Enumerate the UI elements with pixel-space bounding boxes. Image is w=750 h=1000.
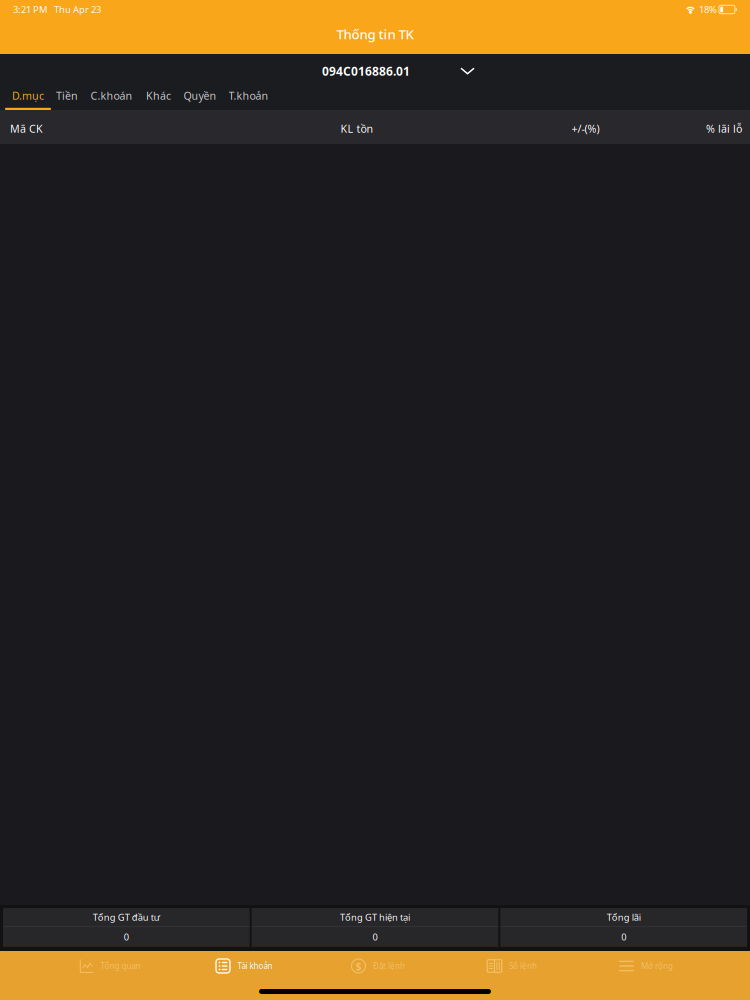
button[interactable]: C.khoán <box>83 88 140 110</box>
button[interactable]: Mở rộng <box>579 951 713 981</box>
staticText: Sổ lệnh <box>509 961 537 971</box>
staticText: 0 <box>124 931 129 943</box>
staticText: Tài khoản <box>237 961 272 971</box>
staticText: Thống tin TK <box>336 25 413 43</box>
staticText: T.khoản <box>228 88 268 103</box>
button[interactable]: T.khoản <box>223 88 274 110</box>
staticText: D.mục <box>12 88 44 103</box>
staticText: Mã CK <box>10 121 43 136</box>
button[interactable]: Tiền <box>51 88 83 110</box>
button[interactable]: Khác <box>140 88 177 110</box>
button[interactable]: Sổ lệnh <box>445 951 579 981</box>
staticText: 094C016886.01 <box>322 63 410 79</box>
button[interactable]: Tài khoản <box>177 951 311 981</box>
button[interactable]: Đặt lệnh <box>311 951 445 981</box>
staticText: Tổng GT hiện tại <box>340 911 410 923</box>
staticText: KL tồn <box>340 121 373 136</box>
button[interactable]: Tổng quan <box>43 951 177 981</box>
staticText: C.khoán <box>90 88 132 103</box>
staticText: Đặt lệnh <box>373 961 405 971</box>
staticText: Quyền <box>183 88 216 103</box>
staticText: Thu Apr 23 <box>54 3 101 16</box>
staticText: 18% <box>699 3 717 16</box>
staticText: 3:21 PM <box>13 3 47 16</box>
staticText: Tổng quan <box>100 961 140 971</box>
staticText: $ <box>355 959 361 973</box>
staticText: % lãi lỗ <box>706 121 742 136</box>
staticText: Khác <box>146 88 171 103</box>
button[interactable]: 094C016886.01 <box>0 54 750 88</box>
button[interactable]: Quyền <box>177 88 223 110</box>
staticText: 0 <box>372 931 377 943</box>
staticText: 0 <box>621 931 626 943</box>
staticText: Tổng lãi <box>607 911 641 923</box>
staticText: Tiền <box>56 88 78 103</box>
button[interactable]: D.mục <box>5 88 51 110</box>
staticText: Tổng GT đầu tư <box>93 911 160 923</box>
staticText: +/-(%) <box>571 121 599 136</box>
staticText: Mở rộng <box>641 961 673 971</box>
